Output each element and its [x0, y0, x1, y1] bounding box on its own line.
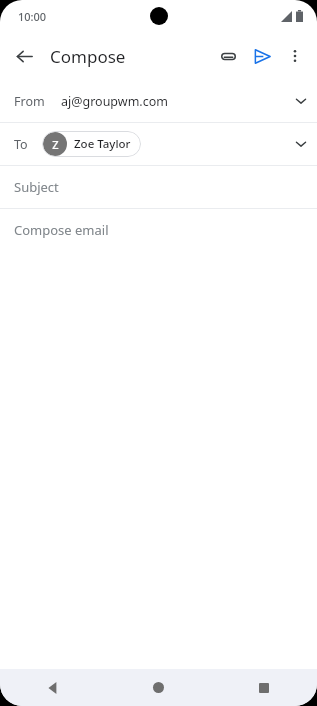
staticText: Z	[52, 137, 59, 152]
button[interactable]: Send	[245, 39, 279, 73]
button[interactable]: Recent apps	[211, 669, 317, 706]
staticText: Zoe Taylor	[74, 136, 131, 152]
staticText: From	[14, 93, 45, 110]
staticText: aj@groupwm.com	[61, 93, 168, 110]
staticText: To	[14, 136, 28, 153]
button[interactable]: Attach file	[211, 39, 245, 73]
button[interactable]: Back	[8, 40, 40, 72]
staticText: Subject	[14, 178, 59, 196]
staticText: Compose email	[14, 221, 109, 239]
button[interactable]: More options	[279, 40, 311, 72]
button[interactable]: Compose email	[0, 209, 317, 251]
staticText: 10:00	[18, 9, 47, 24]
staticText: Compose	[50, 45, 126, 68]
button[interactable]: Subject	[0, 166, 317, 208]
button[interactable]: From	[0, 80, 317, 122]
button[interactable]: To	[0, 123, 317, 165]
button[interactable]: Back	[0, 669, 105, 706]
button[interactable]: Home	[105, 669, 211, 706]
button[interactable]: Z	[42, 131, 141, 157]
